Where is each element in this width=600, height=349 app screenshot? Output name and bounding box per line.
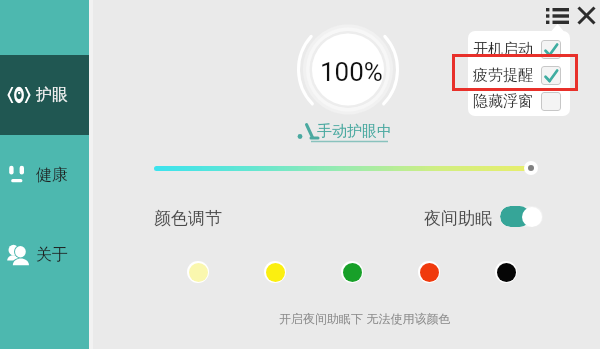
button[interactable]: 手动护眼中 [296,120,392,144]
button[interactable]: 健康 [0,135,89,215]
staticText: 护眼 [36,85,68,105]
button[interactable]: 护眼 [0,55,89,135]
button[interactable]: Colour swatch [418,261,440,283]
button[interactable]: Colour swatch [495,261,517,283]
staticText: 夜间助眠 [424,208,492,229]
button[interactable]: Night mode toggle [500,206,543,227]
button[interactable]: 开机启动 [473,36,561,62]
button[interactable]: Menu [546,8,569,24]
staticText: 开启夜间助眠下 无法使用该颜色 [279,311,451,326]
button[interactable]: Slider handle [524,161,538,175]
button[interactable]: 颜色调节 [154,208,222,229]
staticText: 隐藏浮窗 [473,92,533,111]
button[interactable]: Close [578,7,595,24]
button[interactable]: Colour swatch [264,261,286,283]
button[interactable]: 隐藏浮窗 [473,88,561,114]
button[interactable]: Colour temperature [154,166,537,171]
staticText: 100% [320,57,383,87]
button[interactable]: 关于 [0,215,89,295]
button[interactable]: Colour swatch [187,261,209,283]
button[interactable]: 疲劳提醒 [473,62,561,88]
staticText: 疲劳提醒 [473,66,533,85]
staticText: 手动护眼中 [317,122,392,141]
button[interactable]: Colour swatch [341,261,363,283]
staticText: 开机启动 [473,40,533,59]
staticText: 关于 [36,245,68,265]
staticText: 健康 [36,165,68,185]
